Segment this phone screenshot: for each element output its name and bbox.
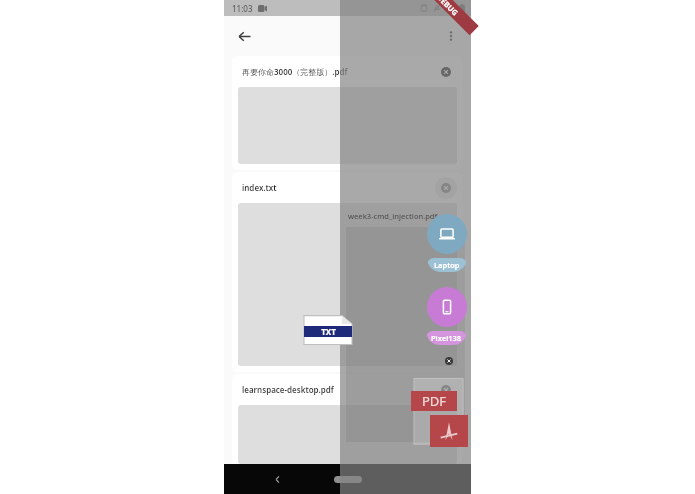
button[interactable]: Remove index.txt [435,177,457,199]
button[interactable]: Back [266,468,288,490]
staticText: learnspace-desktop.pdf [242,384,334,395]
button[interactable]: Home [334,476,362,483]
button[interactable]: 再要你命3000（完整版）.pdf [232,56,463,170]
staticText: index.txt [242,182,277,193]
button[interactable]: Back [230,22,258,50]
button[interactable]: Remove learnspace-desktop.pdf [435,379,457,401]
staticText: 11:03 [232,3,253,14]
button[interactable]: More options [437,22,465,50]
button[interactable]: index.txt [232,172,463,372]
staticText: PDF [422,392,447,410]
button[interactable]: Pixel138 [426,287,467,345]
staticText: week3-cmd_injection.pdf [348,211,438,221]
button[interactable]: Close [441,353,457,369]
button[interactable]: Remove 再要你命3000（完整版）.pdf [435,61,457,83]
staticText: Laptop [434,260,460,270]
staticText: 再要你命3000（完整版）.pdf [242,66,348,77]
staticText: DEBUG [435,0,460,18]
staticText: TXT [321,326,336,337]
button[interactable]: learnspace-desktop.pdf [232,374,463,464]
button[interactable]: Laptop [427,214,467,272]
staticText: Pixel138 [431,333,462,343]
